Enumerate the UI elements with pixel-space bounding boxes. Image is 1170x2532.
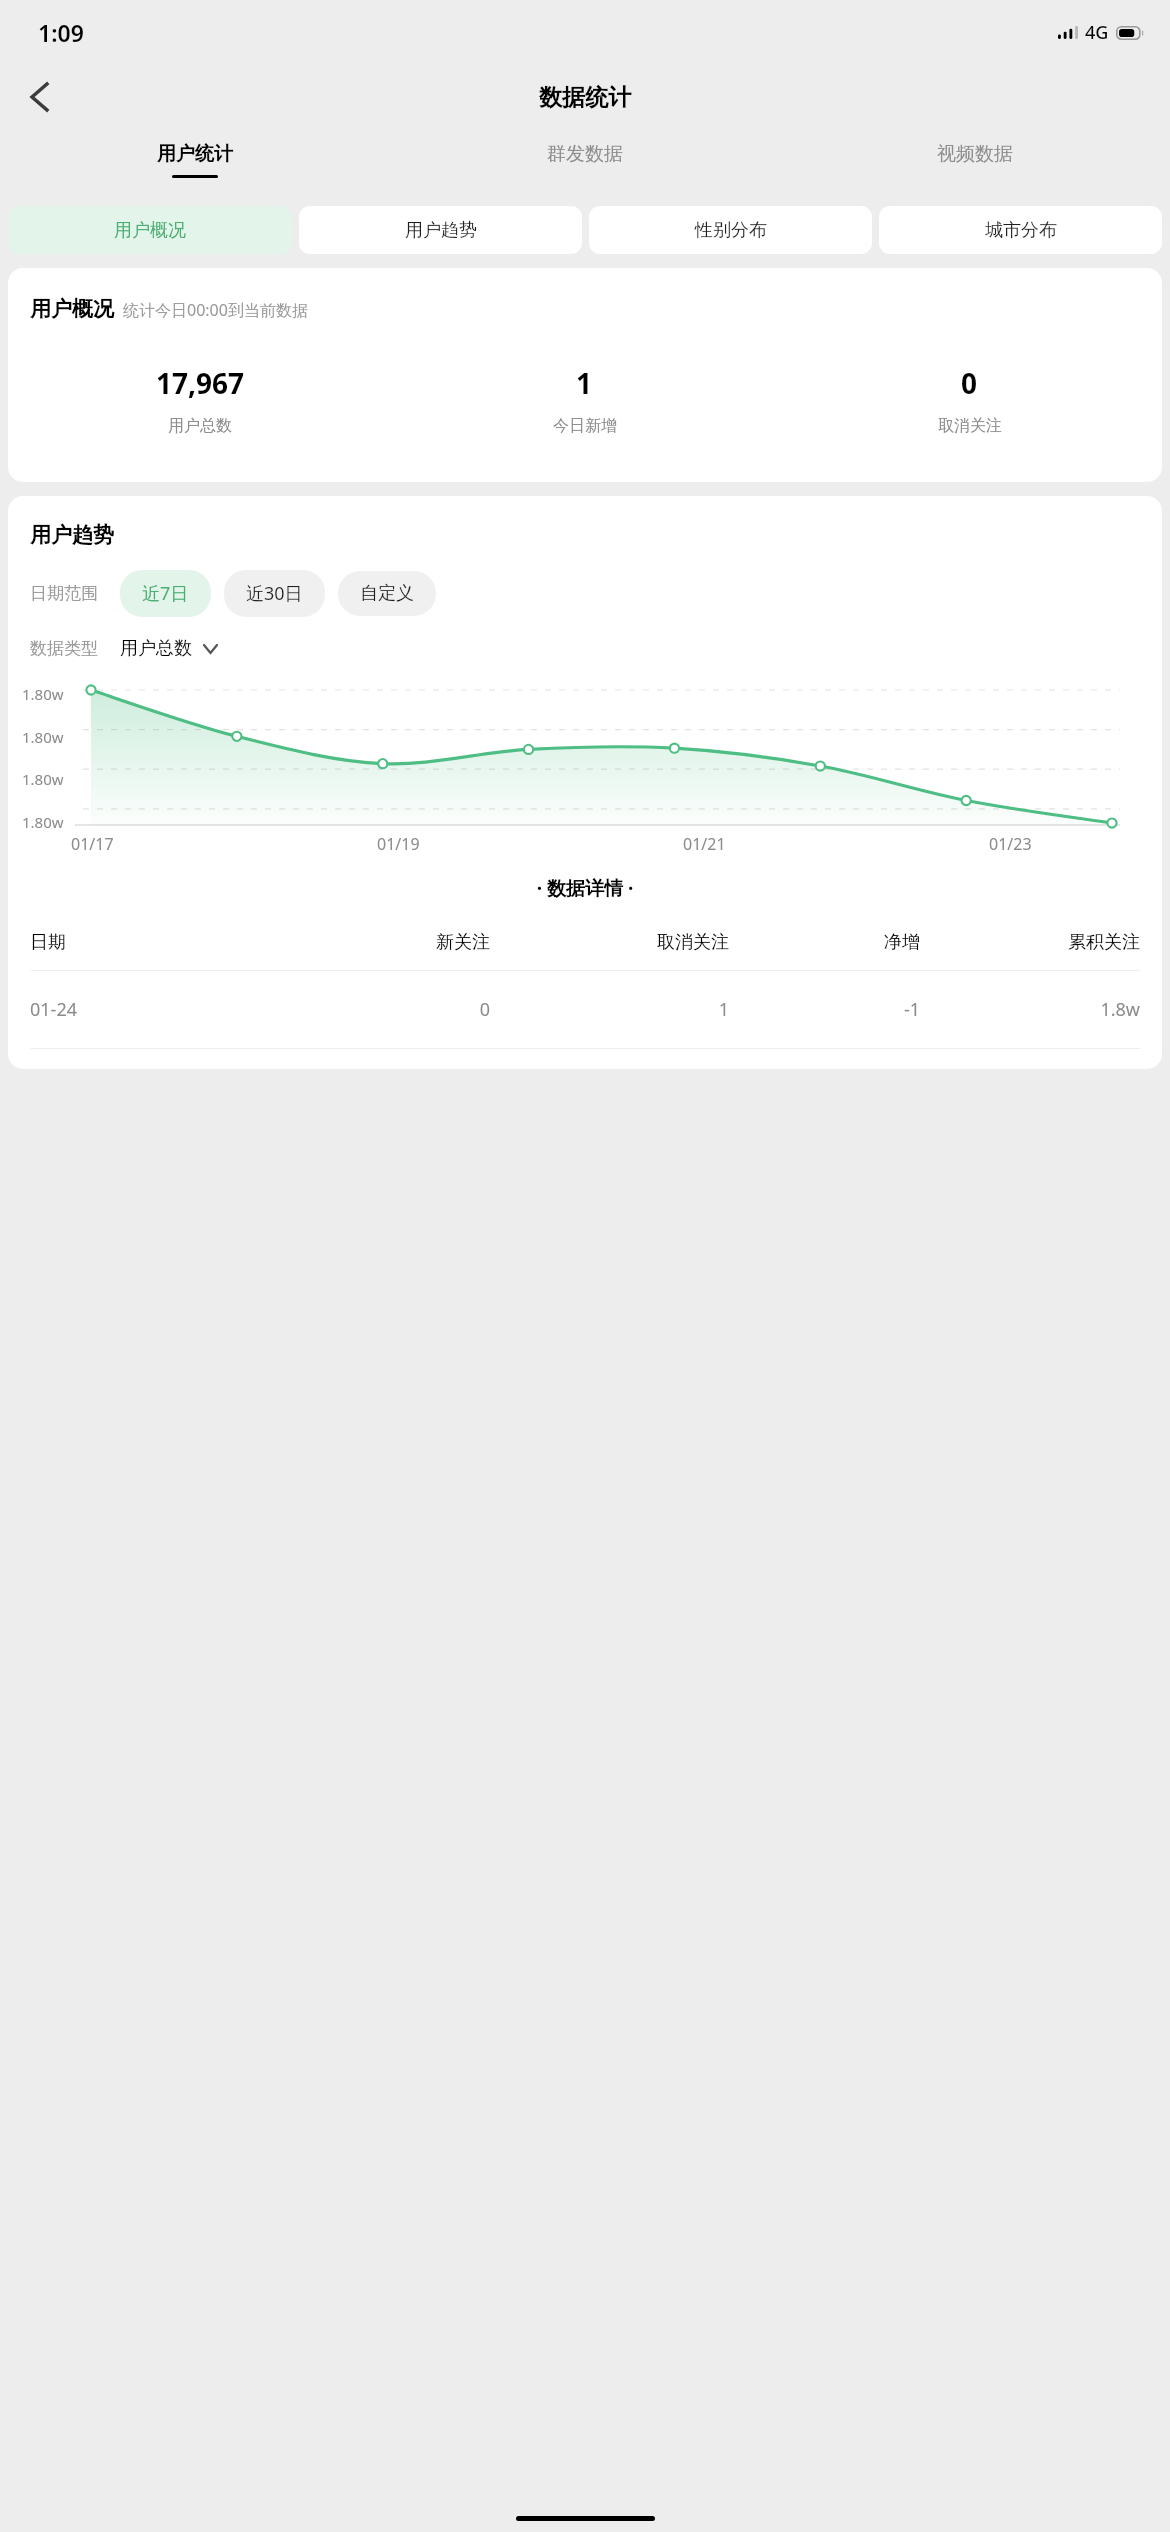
staticText: 4G (1085, 20, 1109, 45)
button[interactable]: Back (11, 69, 67, 125)
button[interactable]: 视频数据 (780, 130, 1170, 190)
staticText: 用户概况 (114, 219, 186, 242)
button[interactable]: 用户概况 (8, 206, 292, 254)
staticText: 0 (961, 364, 978, 402)
button[interactable]: 城市分布 (879, 206, 1162, 254)
staticText: 今日新增 (553, 416, 617, 436)
staticText: 用户总数 (120, 637, 192, 660)
button[interactable]: 群发数据 (390, 130, 780, 190)
staticText: 用户概况 (30, 296, 114, 322)
staticText: 取消关注 (938, 416, 1002, 436)
staticText: 日期 (30, 931, 279, 954)
staticText: 1.80w (22, 769, 64, 789)
staticText: 用户总数 (168, 416, 232, 436)
button[interactable]: 用户统计 (0, 130, 390, 190)
staticText: 城市分布 (985, 219, 1057, 242)
staticText: 取消关注 (490, 931, 729, 954)
staticText: 视频数据 (937, 142, 1013, 166)
staticText: 01/23 (989, 833, 1032, 855)
staticText: 数据统计 (539, 83, 631, 112)
button[interactable]: 用户趋势 (299, 206, 582, 254)
button[interactable]: 近7日 (120, 570, 211, 617)
staticText: 1:09 (38, 17, 84, 48)
button[interactable]: 近30日 (224, 570, 325, 617)
staticText: 0 (279, 997, 490, 1022)
staticText: 近30日 (246, 581, 303, 606)
staticText: 净增 (729, 931, 920, 954)
staticText: 01-24 (30, 997, 279, 1022)
staticText: 01/19 (377, 833, 420, 855)
staticText: 1 (576, 364, 593, 402)
button[interactable]: 自定义 (338, 571, 436, 616)
staticText: 1 (490, 997, 729, 1022)
staticText: 1.8w (920, 997, 1140, 1022)
button[interactable]: 性别分布 (589, 206, 872, 254)
staticText: 17,967 (156, 364, 245, 402)
staticText: 1.80w (22, 727, 64, 747)
staticText: 自定义 (360, 582, 414, 605)
button[interactable]: 数据类型 (30, 637, 217, 660)
staticText: 用户趋势 (30, 522, 114, 548)
staticText: 累积关注 (920, 931, 1140, 954)
staticText: 日期范围 (30, 583, 98, 604)
staticText: 群发数据 (547, 142, 623, 166)
staticText: 用户统计 (157, 142, 233, 166)
staticText: 性别分布 (695, 219, 767, 242)
staticText: 01/17 (71, 833, 114, 855)
staticText: 统计今日00:00到当前数据 (123, 299, 308, 321)
staticText: 1.80w (22, 684, 64, 704)
staticText: 新关注 (279, 931, 490, 954)
staticText: 用户趋势 (405, 219, 477, 242)
staticText: · 数据详情 · (8, 875, 1162, 901)
staticText: -1 (729, 997, 920, 1022)
staticText: 数据类型 (30, 638, 98, 659)
staticText: 1.80w (22, 812, 64, 832)
staticText: 01/21 (683, 833, 726, 855)
staticText: 近7日 (142, 581, 189, 606)
